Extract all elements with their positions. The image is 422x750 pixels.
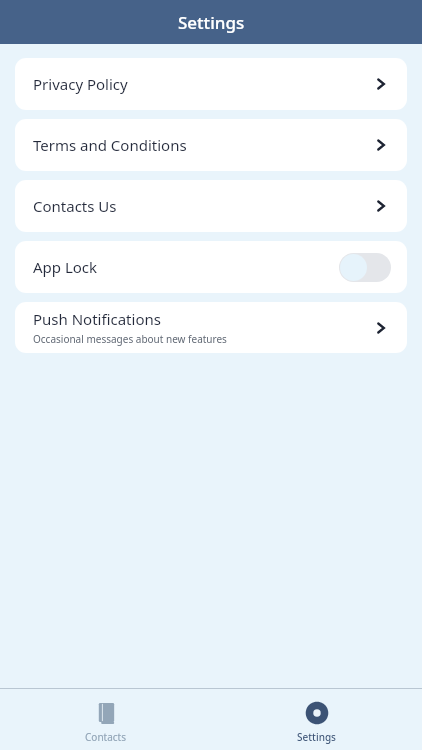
button[interactable]: Contacts Us <box>15 180 407 232</box>
button[interactable]: Privacy Policy <box>15 58 407 110</box>
staticText: Occasional messages about new features <box>33 332 227 346</box>
staticText: Privacy Policy <box>33 74 128 94</box>
staticText: Terms and Conditions <box>33 135 187 155</box>
other: Settings <box>305 701 329 725</box>
button[interactable]: Push Notifications <box>15 302 407 353</box>
staticText: Settings <box>297 730 336 744</box>
staticText: Push Notifications <box>33 309 161 329</box>
button[interactable]: App Lock toggle <box>339 253 391 282</box>
button[interactable]: App Lock <box>15 241 407 293</box>
staticText: Settings <box>178 11 245 34</box>
staticText: Contacts <box>85 730 126 744</box>
button[interactable]: Terms and Conditions <box>15 119 407 171</box>
staticText: App Lock <box>33 257 339 277</box>
staticText: Contacts Us <box>33 196 117 216</box>
other: Contacts <box>94 701 118 725</box>
button[interactable]: Contacts <box>0 689 211 750</box>
button[interactable]: Settings <box>211 689 422 750</box>
